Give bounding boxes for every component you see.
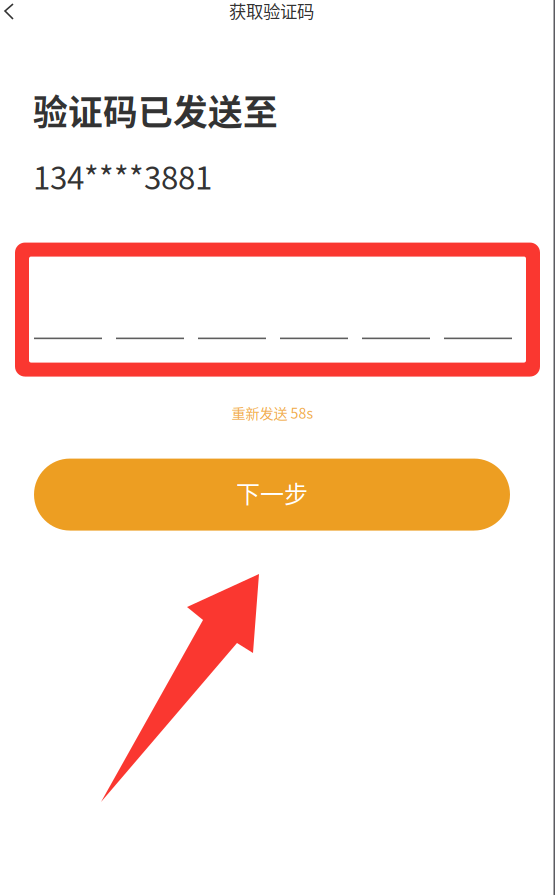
button[interactable]: Back — [0, 0, 30, 28]
button[interactable]: 下一步 — [34, 459, 510, 531]
staticText: 获取验证码 — [229, 0, 314, 23]
staticText: 下一步 — [236, 475, 308, 510]
button[interactable]: 重新发送 58s — [0, 405, 555, 421]
staticText: 134****3881 — [33, 153, 212, 199]
staticText: 重新发送 58s — [231, 402, 313, 423]
staticText: 验证码已发送至 — [33, 85, 278, 135]
